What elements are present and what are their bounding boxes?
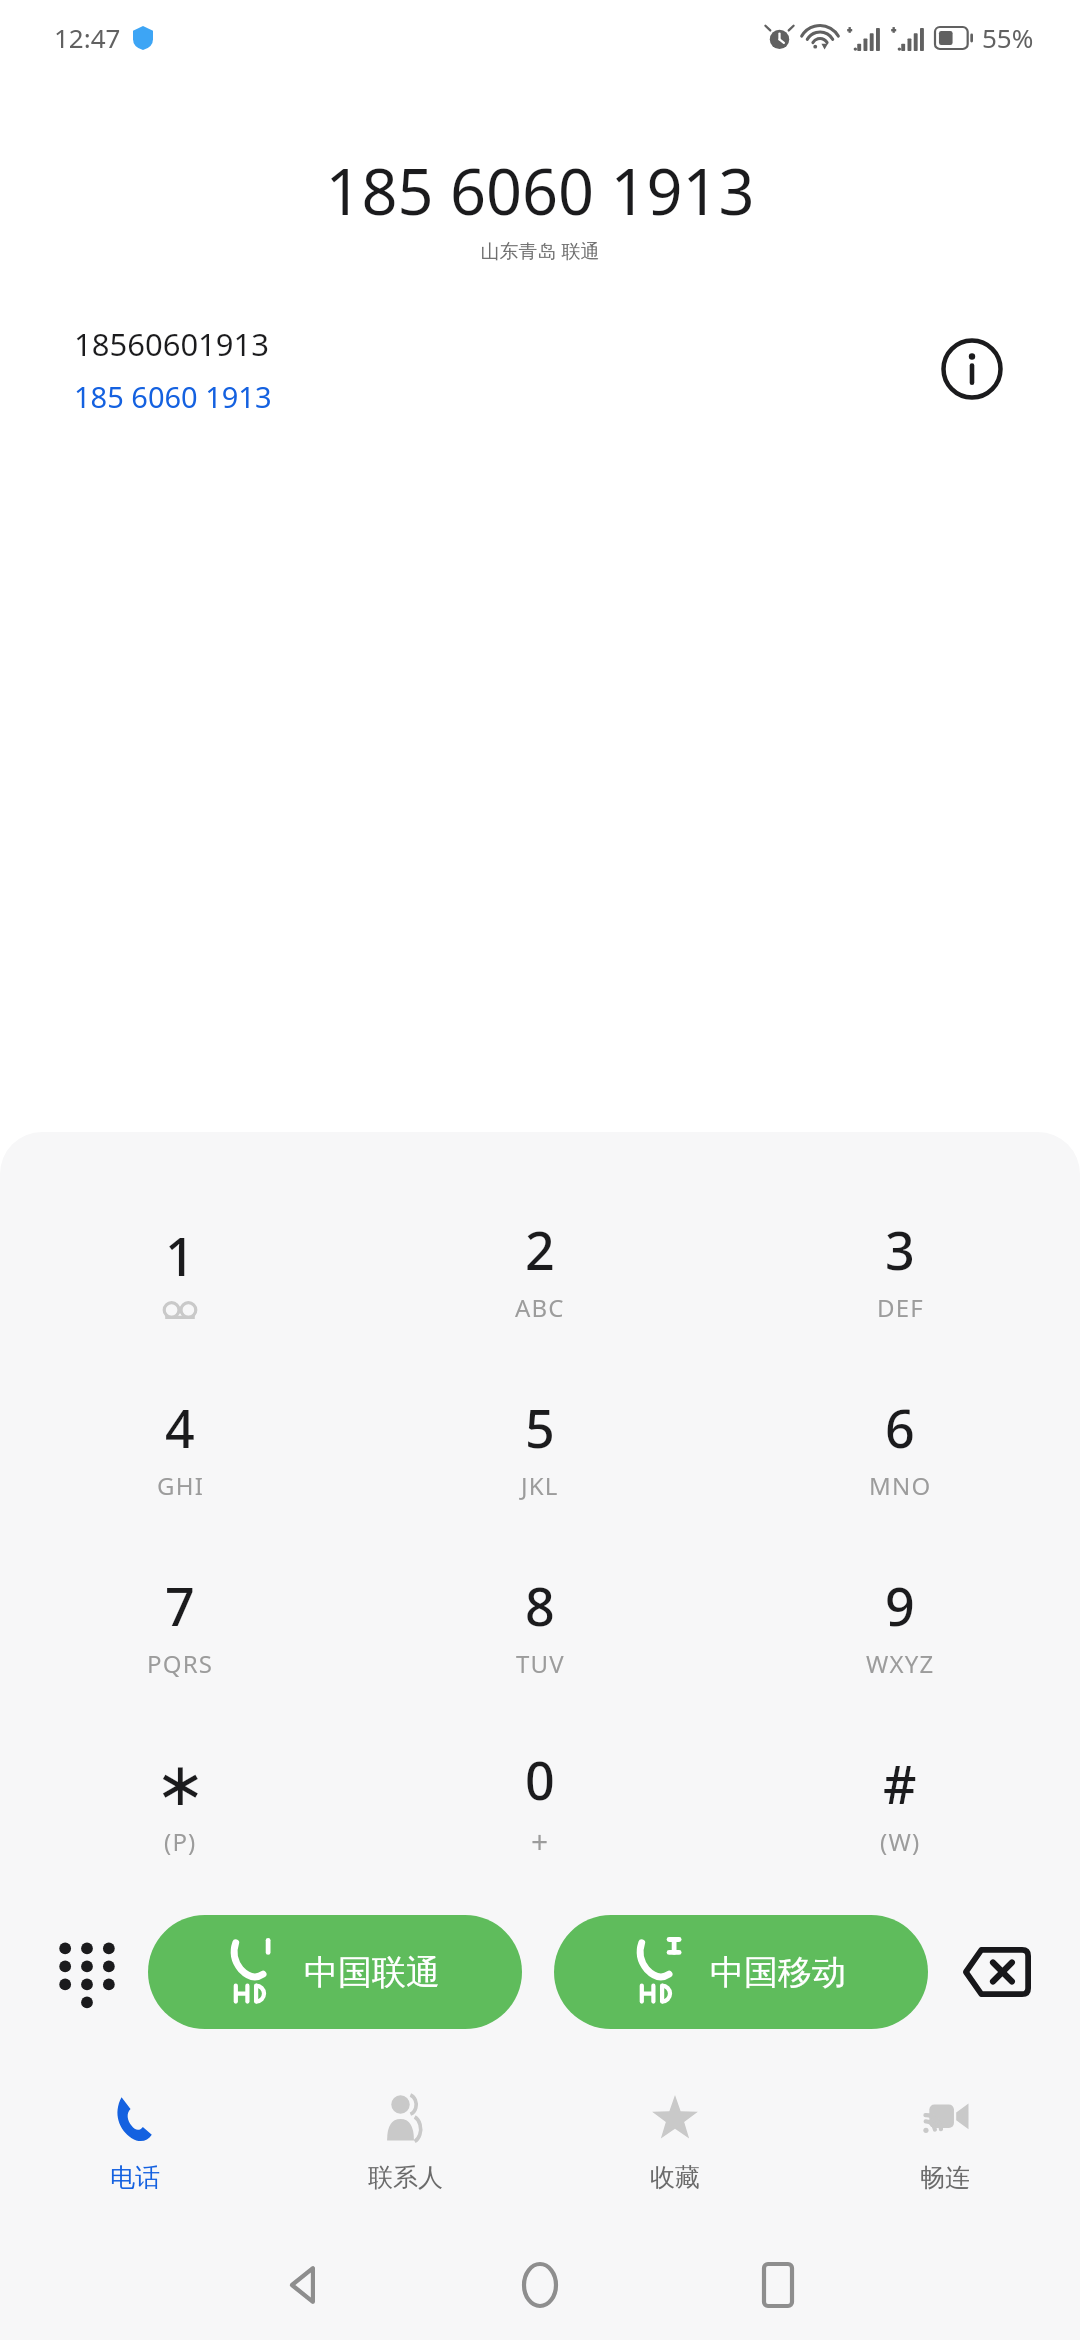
button[interactable]: Contact details (926, 323, 1018, 415)
button[interactable]: Hide dialpad (28, 1913, 146, 2031)
staticText: 3 (885, 1214, 915, 1285)
staticText: (W) (880, 1825, 921, 1858)
staticText: 18560601913 (74, 323, 270, 365)
button[interactable]: 3 (720, 1180, 1080, 1358)
staticText: 0 (525, 1744, 555, 1815)
staticText: DEF (877, 1291, 924, 1324)
button[interactable]: 18560601913 (0, 294, 1080, 444)
staticText: ∗ (155, 1749, 206, 1819)
staticText: 8 (525, 1570, 555, 1641)
button[interactable]: 1 (0, 1180, 360, 1358)
staticText: 联系人 (368, 2162, 443, 2193)
staticText: 7 (165, 1570, 195, 1641)
button[interactable]: Home (421, 2230, 659, 2340)
staticText: ABC (515, 1291, 565, 1324)
staticText: 12:47 (54, 20, 121, 55)
staticText: 6 (885, 1392, 915, 1463)
staticText: WXYZ (866, 1647, 935, 1680)
button[interactable]: ∗ (0, 1714, 360, 1892)
button[interactable]: 收藏 (540, 2052, 810, 2230)
button[interactable]: 6 (720, 1358, 1080, 1536)
staticText: 185 6060 1913 (0, 148, 1080, 234)
button[interactable]: 9 (720, 1536, 1080, 1714)
staticText: 55% (982, 20, 1034, 55)
staticText: 2 (525, 1214, 555, 1285)
button[interactable]: 联系人 (270, 2052, 540, 2230)
staticText: # (883, 1748, 917, 1819)
button[interactable]: 5 (360, 1358, 720, 1536)
staticText: (P) (164, 1825, 197, 1858)
button[interactable]: 中国移动 (554, 1915, 928, 2029)
staticText: 9 (885, 1570, 915, 1641)
button[interactable]: 中国联通 (148, 1915, 522, 2029)
staticText: 5 (525, 1392, 555, 1463)
button[interactable]: Backspace (942, 1913, 1052, 2031)
button[interactable]: 电话 (0, 2052, 270, 2230)
staticText: JKL (521, 1469, 559, 1502)
button[interactable]: Recents (659, 2230, 897, 2340)
staticText: TUV (516, 1647, 565, 1680)
staticText: 中国移动 (710, 1951, 846, 1994)
button[interactable]: Back (183, 2230, 421, 2340)
button[interactable]: 4 (0, 1358, 360, 1536)
staticText: PQRS (147, 1647, 214, 1680)
button[interactable]: 畅连 (810, 2052, 1080, 2230)
staticText: 电话 (110, 2162, 160, 2193)
button[interactable]: # (720, 1714, 1080, 1892)
button[interactable]: 2 (360, 1180, 720, 1358)
staticText: MNO (869, 1469, 932, 1502)
staticText: 山东青岛 联通 (0, 238, 1080, 264)
staticText: + (531, 1821, 550, 1862)
button[interactable]: 7 (0, 1536, 360, 1714)
staticText: 畅连 (920, 2162, 970, 2193)
button[interactable]: 0 (360, 1714, 720, 1892)
staticText: 收藏 (650, 2162, 700, 2193)
staticText: GHI (157, 1469, 204, 1502)
staticText: 1 (165, 1220, 195, 1291)
button[interactable]: 8 (360, 1536, 720, 1714)
staticText: 中国联通 (304, 1951, 440, 1994)
staticText: 4 (165, 1392, 195, 1463)
staticText: 185 6060 1913 (74, 377, 272, 416)
